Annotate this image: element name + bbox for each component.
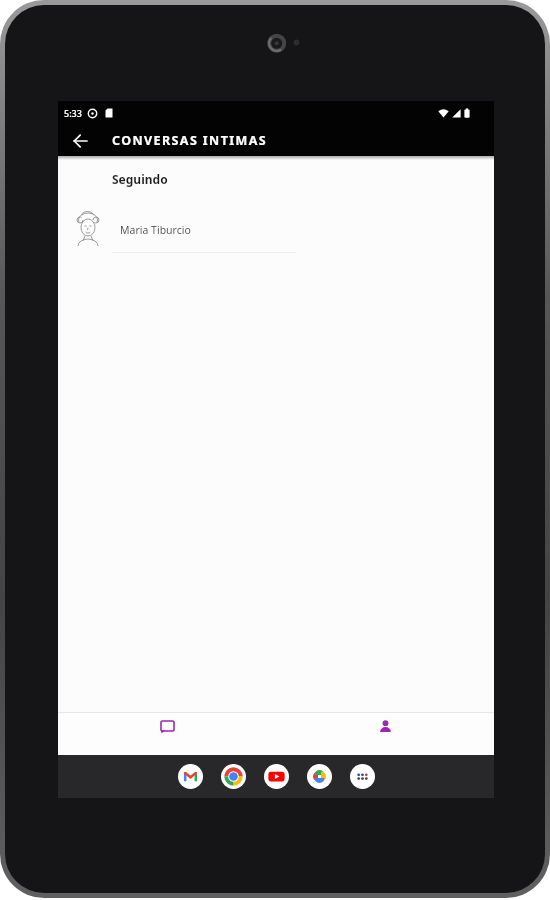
button[interactable] bbox=[307, 764, 332, 789]
button[interactable] bbox=[58, 720, 276, 755]
staticText: CONVERSAS INTIMAS bbox=[112, 132, 268, 149]
staticText: Seguindo bbox=[112, 171, 168, 187]
button[interactable] bbox=[221, 764, 246, 789]
button[interactable] bbox=[350, 764, 375, 789]
staticText: 5:33 bbox=[64, 107, 82, 119]
button[interactable] bbox=[58, 125, 102, 156]
button[interactable] bbox=[264, 764, 289, 789]
button[interactable] bbox=[276, 720, 494, 755]
button[interactable]: Maria Tiburcio bbox=[58, 206, 494, 252]
button[interactable] bbox=[178, 764, 203, 789]
staticText: Maria Tiburcio bbox=[120, 223, 191, 237]
